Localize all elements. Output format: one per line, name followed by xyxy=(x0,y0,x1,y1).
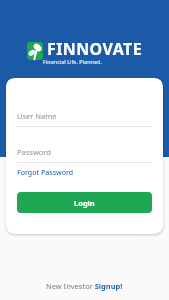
button[interactable]: New Investor Signup! xyxy=(46,281,123,291)
button[interactable]: Forgot Password xyxy=(17,168,74,178)
staticText: FINNOVATE xyxy=(47,38,143,60)
staticText: Financial Life. Planned. xyxy=(43,58,102,65)
button[interactable]: User Name xyxy=(17,111,152,121)
button[interactable]: Login xyxy=(17,192,152,213)
staticText: New Investor Signup! xyxy=(46,281,123,291)
button[interactable]: Password xyxy=(17,147,152,157)
staticText: Login xyxy=(74,198,95,208)
